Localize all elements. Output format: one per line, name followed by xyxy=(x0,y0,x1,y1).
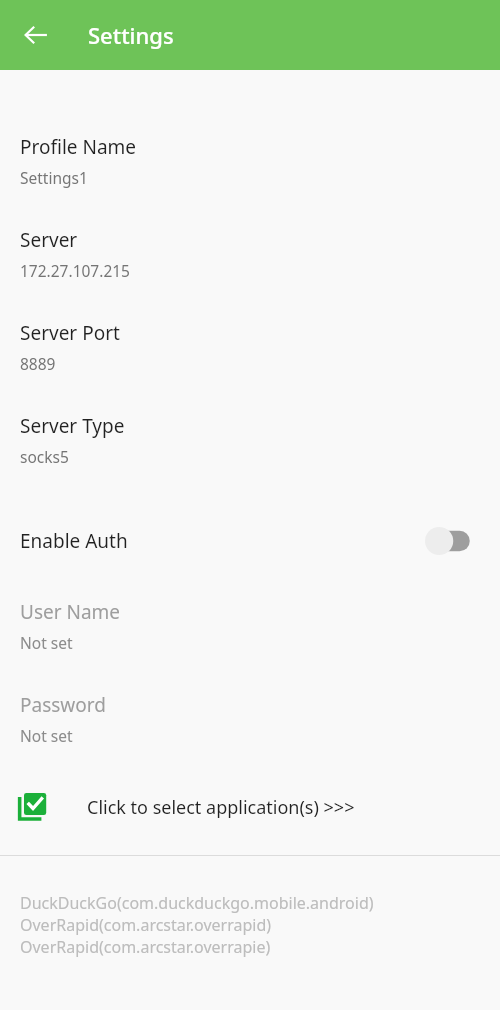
staticText: Click to select application(s) >>> xyxy=(87,795,355,820)
button[interactable]: Server Port xyxy=(0,308,500,401)
staticText: Password xyxy=(20,692,106,718)
button[interactable]: Password xyxy=(0,680,500,773)
staticText: OverRapid(com.arcstar.overrapid) xyxy=(20,914,272,936)
staticText: Settings xyxy=(88,20,174,50)
staticText: Server xyxy=(20,227,78,253)
staticText: Server Port xyxy=(20,320,120,346)
staticText: Enable Auth xyxy=(20,528,424,554)
staticText: DuckDuckGo(com.duckduckgo.mobile.android… xyxy=(20,892,374,914)
staticText: Server Type xyxy=(20,413,125,439)
staticText: OverRapid(com.arcstar.overrapie) xyxy=(20,936,271,958)
staticText: 172.27.107.215 xyxy=(20,260,130,281)
staticText: Not set xyxy=(20,632,73,653)
staticText: Not set xyxy=(20,725,73,746)
button[interactable]: Profile Name xyxy=(0,122,500,215)
staticText: socks5 xyxy=(20,446,69,467)
button[interactable]: User Name xyxy=(0,587,500,680)
other: Enable Auth toggle xyxy=(424,526,476,556)
button[interactable]: Click to select application(s) >>> xyxy=(0,773,500,841)
button[interactable]: Back xyxy=(10,9,62,61)
staticText: Profile Name xyxy=(20,134,137,160)
button[interactable]: Enable Auth xyxy=(0,494,500,587)
staticText: Settings1 xyxy=(20,167,88,188)
button[interactable]: Server xyxy=(0,215,500,308)
staticText: 8889 xyxy=(20,353,56,374)
staticText: User Name xyxy=(20,599,121,625)
button[interactable]: Server Type xyxy=(0,401,500,494)
